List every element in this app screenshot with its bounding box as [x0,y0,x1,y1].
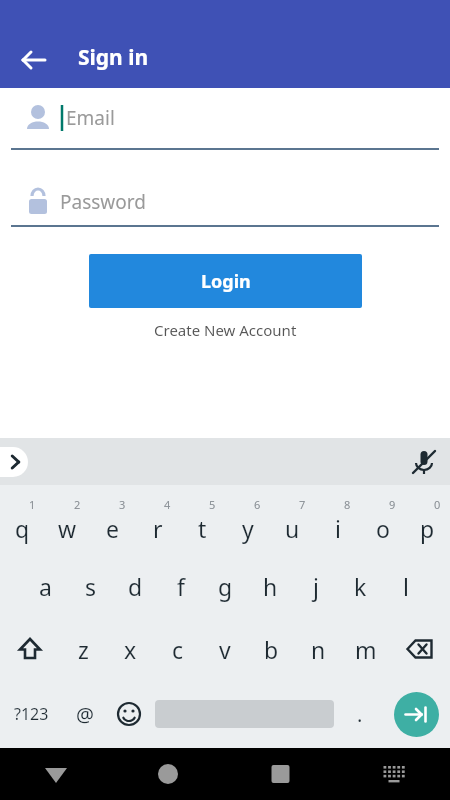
staticText: @ [76,701,94,728]
button[interactable]: p [405,501,450,551]
button[interactable]: t [180,501,225,551]
button[interactable]: Home [112,748,224,800]
staticText: 3 [119,497,126,512]
button[interactable]: Voice input muted [406,444,442,480]
staticText: o [376,513,390,544]
button[interactable]: w [45,501,90,551]
staticText: p [420,513,435,544]
button[interactable]: a [22,563,68,609]
staticText: r [153,513,163,544]
button[interactable]: c [154,625,201,673]
staticText: e [106,513,119,544]
button[interactable]: f [158,563,203,609]
button[interactable]: k [338,563,383,609]
button[interactable]: x [107,625,154,673]
button[interactable]: l [383,563,428,609]
staticText: Login [201,269,251,294]
staticText: g [218,571,233,602]
button[interactable]: Password [0,179,450,225]
staticText: t [198,513,207,544]
button[interactable]: . [338,687,382,741]
button[interactable]: j [293,563,338,609]
staticText: l [403,571,409,602]
staticText: f [177,571,185,602]
staticText: 5 [209,497,216,512]
staticText: i [335,513,341,544]
button[interactable]: Next [394,692,439,737]
staticText: ?123 [14,703,49,725]
staticText: 6 [254,497,261,512]
button[interactable]: d [113,563,158,609]
staticText: 9 [389,497,396,512]
staticText: 7 [299,497,306,512]
staticText: j [313,571,319,602]
button[interactable]: Email [0,88,450,148]
button[interactable]: u [270,501,315,551]
button[interactable]: Back [12,38,56,82]
button[interactable]: g [203,563,248,609]
button[interactable]: q [0,501,45,551]
button[interactable]: Recent apps [224,748,337,800]
staticText: s [85,571,97,602]
button[interactable]: b [248,625,295,673]
staticText: a [39,571,52,602]
button[interactable]: s [68,563,113,609]
button[interactable]: Switch keyboard [337,748,450,800]
staticText: w [58,513,77,544]
button[interactable]: n [295,625,342,673]
staticText: . [357,701,363,728]
button[interactable]: o [360,501,405,551]
staticText: q [15,513,30,544]
button[interactable]: i [315,501,360,551]
button[interactable]: Create New Account [146,316,305,344]
button[interactable]: Expand suggestions [0,447,28,477]
staticText: h [263,571,278,602]
staticText: y [242,513,254,544]
staticText: u [285,513,300,544]
staticText: x [124,634,137,665]
staticText: v [219,634,231,665]
button[interactable]: h [248,563,293,609]
staticText: 8 [344,497,351,512]
staticText: k [354,571,367,602]
button[interactable]: r [135,501,180,551]
button[interactable]: Login [89,254,362,308]
button[interactable]: @ [63,687,107,741]
button[interactable]: y [225,501,270,551]
button[interactable]: Emoji [107,687,151,741]
button[interactable]: m [342,625,389,673]
button[interactable]: ?123 [0,687,63,741]
button[interactable]: Backspace [389,625,450,673]
button[interactable]: Shift [0,625,60,673]
button[interactable]: z [60,625,107,673]
staticText: n [311,634,326,665]
staticText: Create New Account [154,320,297,340]
staticText: 0 [434,497,441,512]
staticText: d [128,571,143,602]
staticText: Sign in [78,43,149,72]
staticText: z [78,634,89,665]
staticText: Password [60,189,146,215]
staticText: m [355,634,377,665]
staticText: c [172,634,184,665]
staticText: 2 [74,497,81,512]
staticText: 4 [164,497,171,512]
button[interactable]: e [90,501,135,551]
button[interactable]: Hide keyboard [0,748,112,800]
staticText: 1 [29,497,36,512]
button[interactable]: v [201,625,248,673]
staticText: Email [66,105,115,131]
staticText: b [264,634,279,665]
